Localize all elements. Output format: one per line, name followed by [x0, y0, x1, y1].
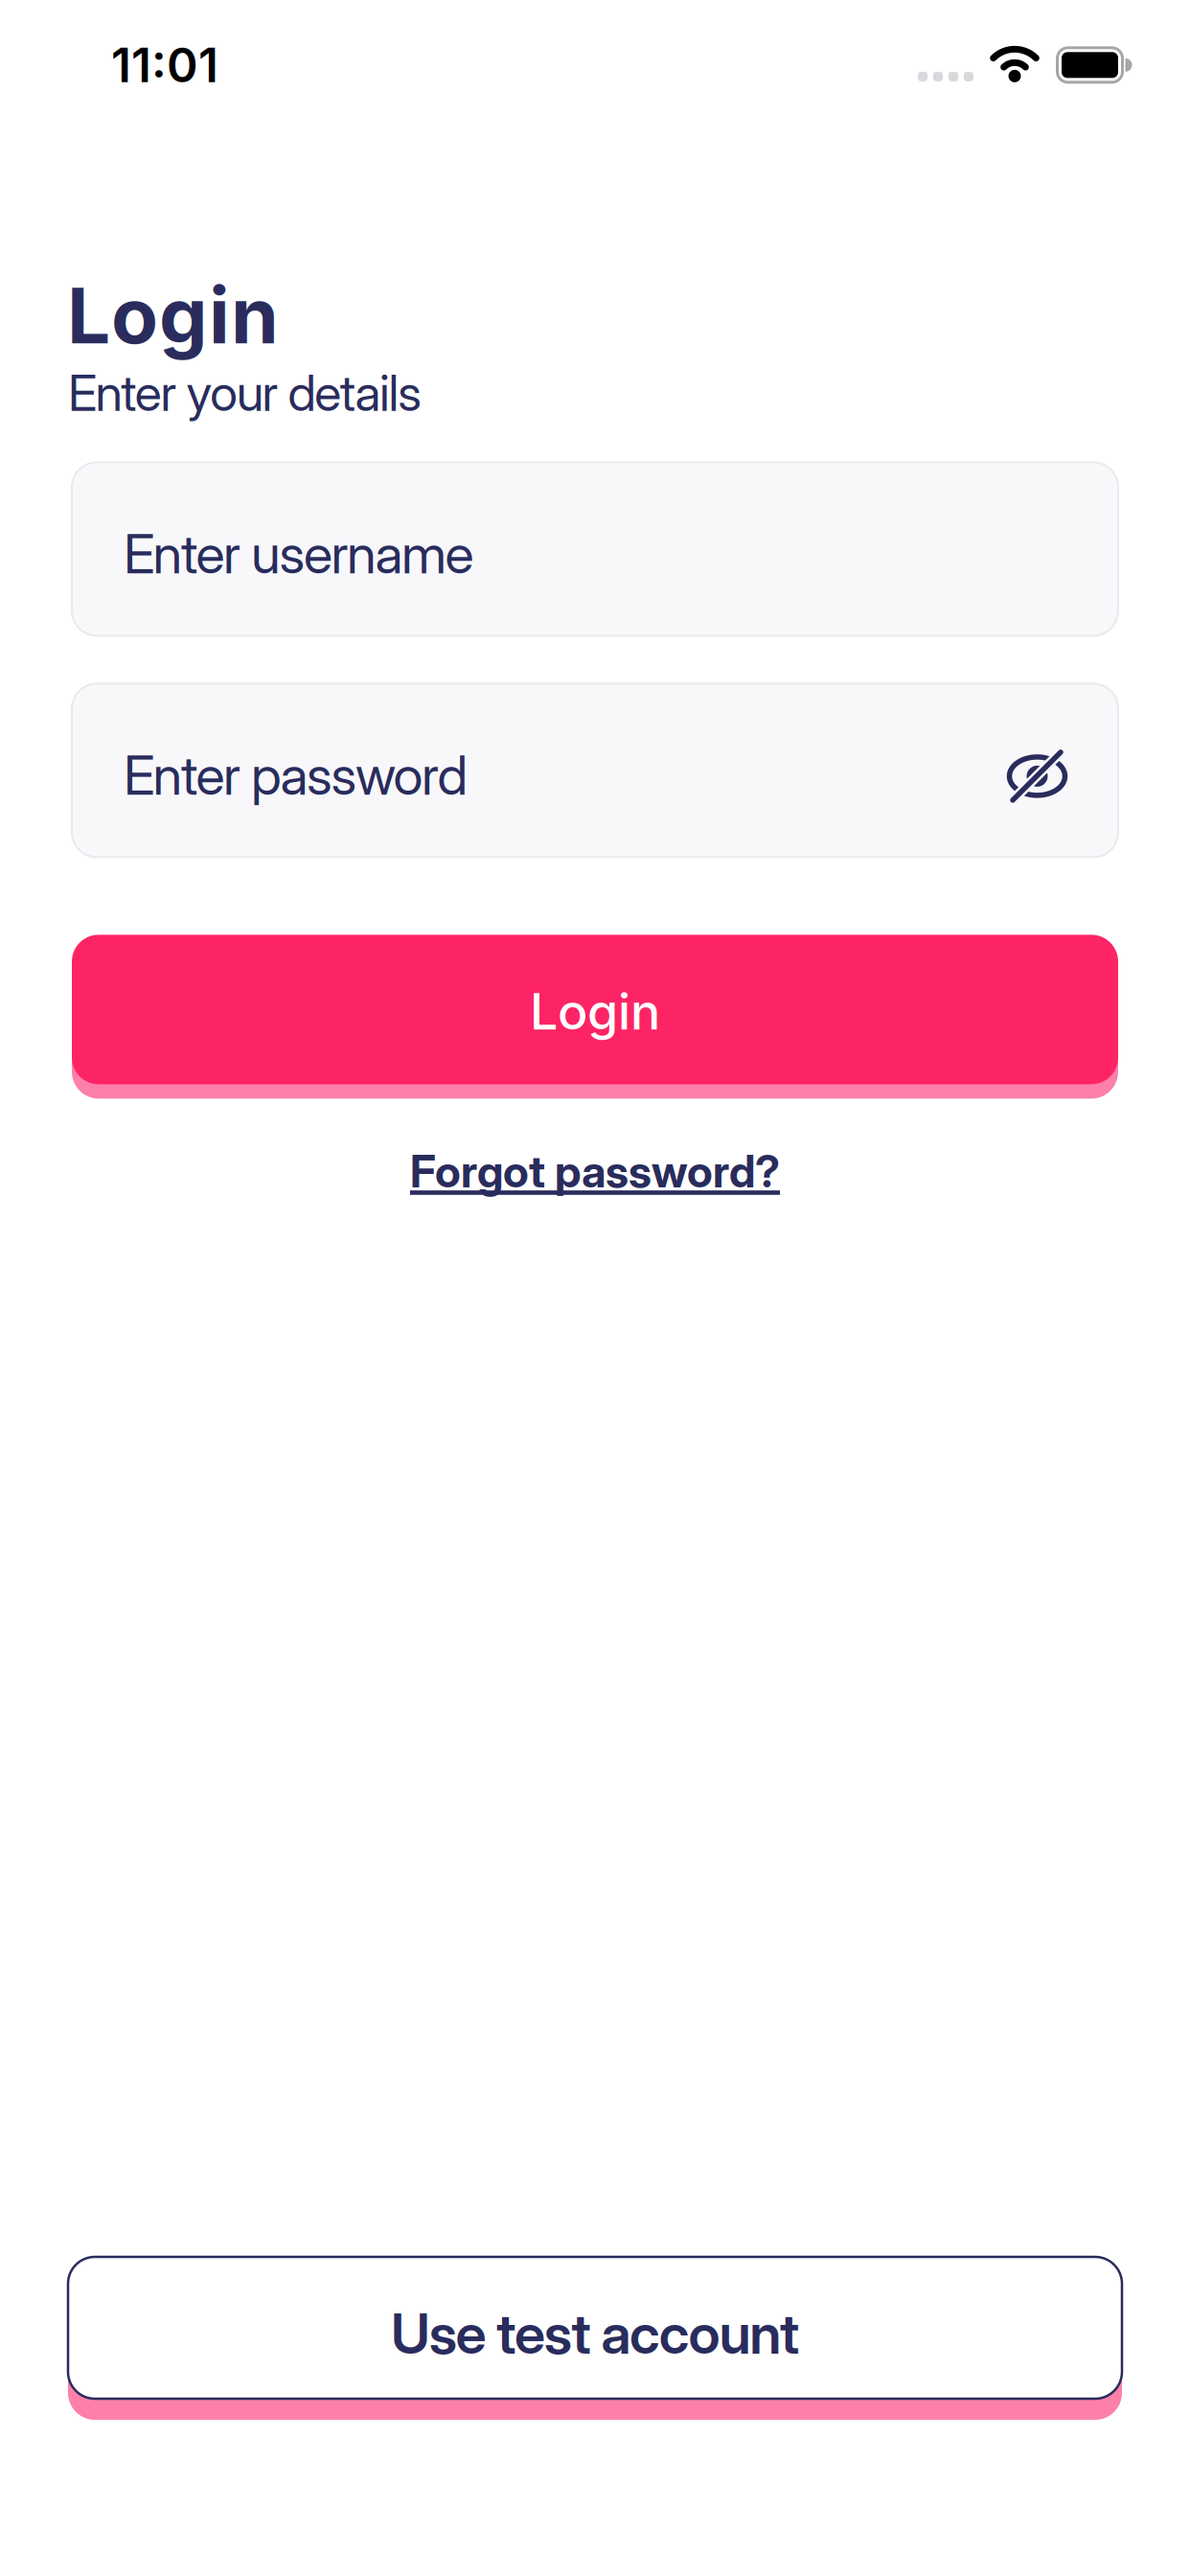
staticText: Enter password	[124, 743, 468, 808]
staticText: Use test account	[391, 2300, 799, 2367]
staticText: Forgot password?	[410, 1145, 780, 1198]
staticText: Login	[530, 981, 660, 1042]
staticText: Login	[67, 269, 279, 362]
button[interactable]: Forgot password?	[410, 1145, 780, 1198]
staticText: 11:01	[111, 36, 218, 94]
button[interactable]: Use test account	[68, 2257, 1122, 2399]
button[interactable]: Login	[72, 935, 1118, 1084]
button[interactable]: Enter username	[72, 462, 1118, 636]
staticText: Enter your details	[68, 363, 422, 423]
button[interactable]: Enter password	[72, 684, 1118, 857]
staticText: Enter username	[124, 521, 474, 586]
button[interactable]: Show password	[1007, 746, 1068, 812]
